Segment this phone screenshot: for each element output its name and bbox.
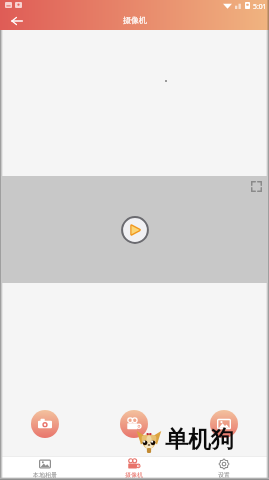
staticText: 摄像机 [125,471,143,479]
button[interactable]: 设置 [179,457,269,480]
button[interactable]: Gallery [210,410,238,438]
staticText: 5:01 [253,2,267,11]
staticText: 本地相册 [33,471,57,479]
button[interactable]: Take photo [31,410,59,438]
button[interactable]: 摄像机 [89,457,179,480]
staticText: 设置 [218,471,230,479]
button[interactable]: Record video [120,410,148,438]
button[interactable]: Play [121,216,149,244]
button[interactable]: 本地相册 [0,457,89,480]
staticText: 摄像机 [123,15,147,25]
button[interactable]: Back [2,12,32,30]
button[interactable]: Fullscreen [251,181,262,192]
staticText: 单机狗 [165,425,234,454]
